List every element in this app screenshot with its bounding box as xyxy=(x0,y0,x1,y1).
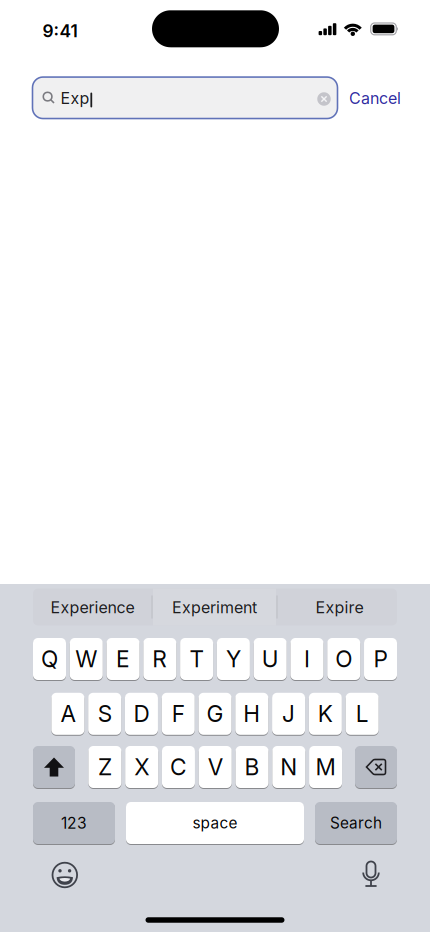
button[interactable]: M xyxy=(309,746,342,788)
staticText: K xyxy=(318,700,333,727)
button[interactable]: O xyxy=(327,638,360,680)
button[interactable]: Experiment xyxy=(153,589,276,626)
staticText: C xyxy=(170,753,187,781)
button[interactable]: Delete xyxy=(355,746,397,788)
staticText: G xyxy=(206,700,223,727)
button[interactable]: C xyxy=(162,746,195,788)
button[interactable]: Cancel xyxy=(349,89,401,108)
button[interactable]: L xyxy=(346,693,379,735)
staticText: W xyxy=(75,645,97,673)
staticText: Y xyxy=(226,645,241,673)
staticText: T xyxy=(190,645,204,673)
staticText: Experience xyxy=(50,598,134,617)
button[interactable]: Z xyxy=(88,746,121,788)
staticText: A xyxy=(60,700,75,727)
button[interactable]: B xyxy=(235,746,268,788)
staticText: N xyxy=(280,753,297,781)
button[interactable]: R xyxy=(143,638,176,680)
staticText: O xyxy=(335,645,352,673)
button[interactable]: F xyxy=(162,693,195,735)
staticText: space xyxy=(192,814,237,832)
staticText: U xyxy=(262,645,279,673)
button[interactable]: A xyxy=(51,693,84,735)
staticText: 9:41 xyxy=(42,21,77,41)
staticText: I xyxy=(304,645,310,673)
staticText: Expire xyxy=(315,598,363,617)
staticText: Z xyxy=(98,753,112,781)
staticText: P xyxy=(373,645,387,673)
staticText: E xyxy=(116,645,130,673)
button[interactable]: I xyxy=(290,638,323,680)
button[interactable]: Emoji xyxy=(50,860,80,890)
staticText: F xyxy=(172,700,185,727)
staticText: R xyxy=(152,645,167,673)
button[interactable]: Dictation xyxy=(356,860,386,890)
staticText: Search xyxy=(330,814,382,832)
button[interactable]: J xyxy=(272,693,305,735)
button[interactable]: P xyxy=(364,638,397,680)
button[interactable]: Q xyxy=(33,638,66,680)
button[interactable]: V xyxy=(199,746,232,788)
button[interactable]: Clear text xyxy=(317,92,331,106)
button[interactable]: W xyxy=(70,638,103,680)
button[interactable]: 123 xyxy=(33,802,115,844)
button[interactable]: D xyxy=(125,693,158,735)
staticText: B xyxy=(244,753,259,781)
button[interactable]: Shift xyxy=(33,746,75,788)
staticText: 123 xyxy=(61,814,87,832)
staticText: Q xyxy=(41,645,58,673)
staticText: H xyxy=(243,700,260,727)
button[interactable]: K xyxy=(309,693,342,735)
staticText: M xyxy=(316,753,336,781)
staticText: L xyxy=(356,700,369,727)
button[interactable]: T xyxy=(180,638,213,680)
staticText: Experiment xyxy=(172,598,257,617)
staticText: J xyxy=(282,700,295,727)
button[interactable]: Y xyxy=(217,638,250,680)
staticText: D xyxy=(133,700,149,727)
button[interactable]: E xyxy=(107,638,140,680)
button[interactable]: G xyxy=(198,693,231,735)
button[interactable]: S xyxy=(88,693,121,735)
button[interactable]: Experience xyxy=(33,589,151,626)
button[interactable]: Expire xyxy=(280,589,398,626)
staticText: Exp xyxy=(60,89,89,108)
button[interactable]: X xyxy=(125,746,158,788)
staticText: X xyxy=(134,753,149,781)
button[interactable]: H xyxy=(235,693,268,735)
staticText: V xyxy=(208,753,223,781)
button[interactable]: space xyxy=(126,802,304,844)
staticText: S xyxy=(98,700,112,727)
staticText: Cancel xyxy=(349,89,401,108)
button[interactable]: N xyxy=(272,746,305,788)
button[interactable]: Search xyxy=(315,802,397,844)
button[interactable]: U xyxy=(254,638,287,680)
